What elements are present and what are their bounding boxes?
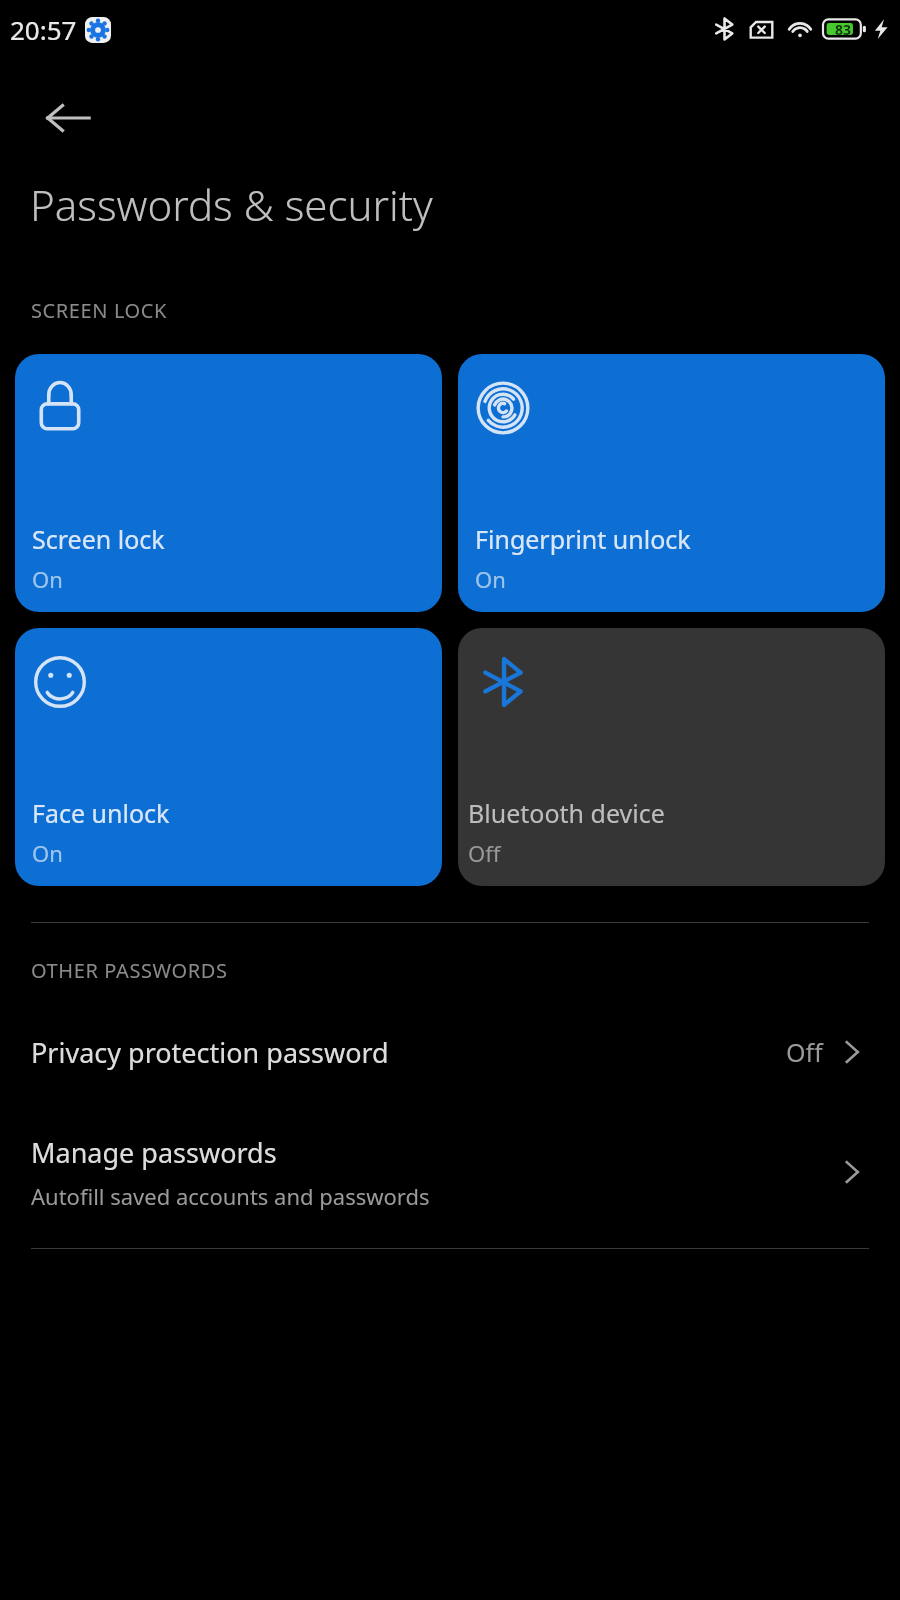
staticText: Off <box>786 1035 823 1069</box>
staticText: On <box>475 564 506 594</box>
staticText: OTHER PASSWORDS <box>31 957 228 984</box>
staticText: Face unlock <box>32 796 170 830</box>
staticText: Passwords & security <box>30 176 433 233</box>
other: Open <box>835 1155 869 1189</box>
button[interactable]: Fingerprint unlock <box>458 354 885 612</box>
staticText: SCREEN LOCK <box>31 297 168 324</box>
staticText: Manage passwords <box>31 1134 277 1171</box>
staticText: Bluetooth device <box>468 796 665 830</box>
button[interactable]: Manage passwords <box>0 1116 900 1228</box>
button[interactable]: Face unlock <box>15 628 442 886</box>
staticText: 83 <box>835 20 852 39</box>
staticText: 20:57 <box>10 12 77 47</box>
button[interactable]: Privacy protection password <box>0 1006 900 1098</box>
other: Open <box>835 1035 869 1069</box>
staticText: On <box>32 564 63 594</box>
staticText: Fingerprint unlock <box>475 522 691 556</box>
staticText: Privacy protection password <box>31 1034 786 1071</box>
button[interactable]: Screen lock <box>15 354 442 612</box>
staticText: Autofill saved accounts and passwords <box>31 1181 430 1211</box>
button[interactable]: Bluetooth device <box>458 628 885 886</box>
button[interactable]: Back <box>36 86 100 150</box>
staticText: On <box>32 838 63 868</box>
staticText: Off <box>468 838 501 868</box>
staticText: Screen lock <box>32 522 165 556</box>
